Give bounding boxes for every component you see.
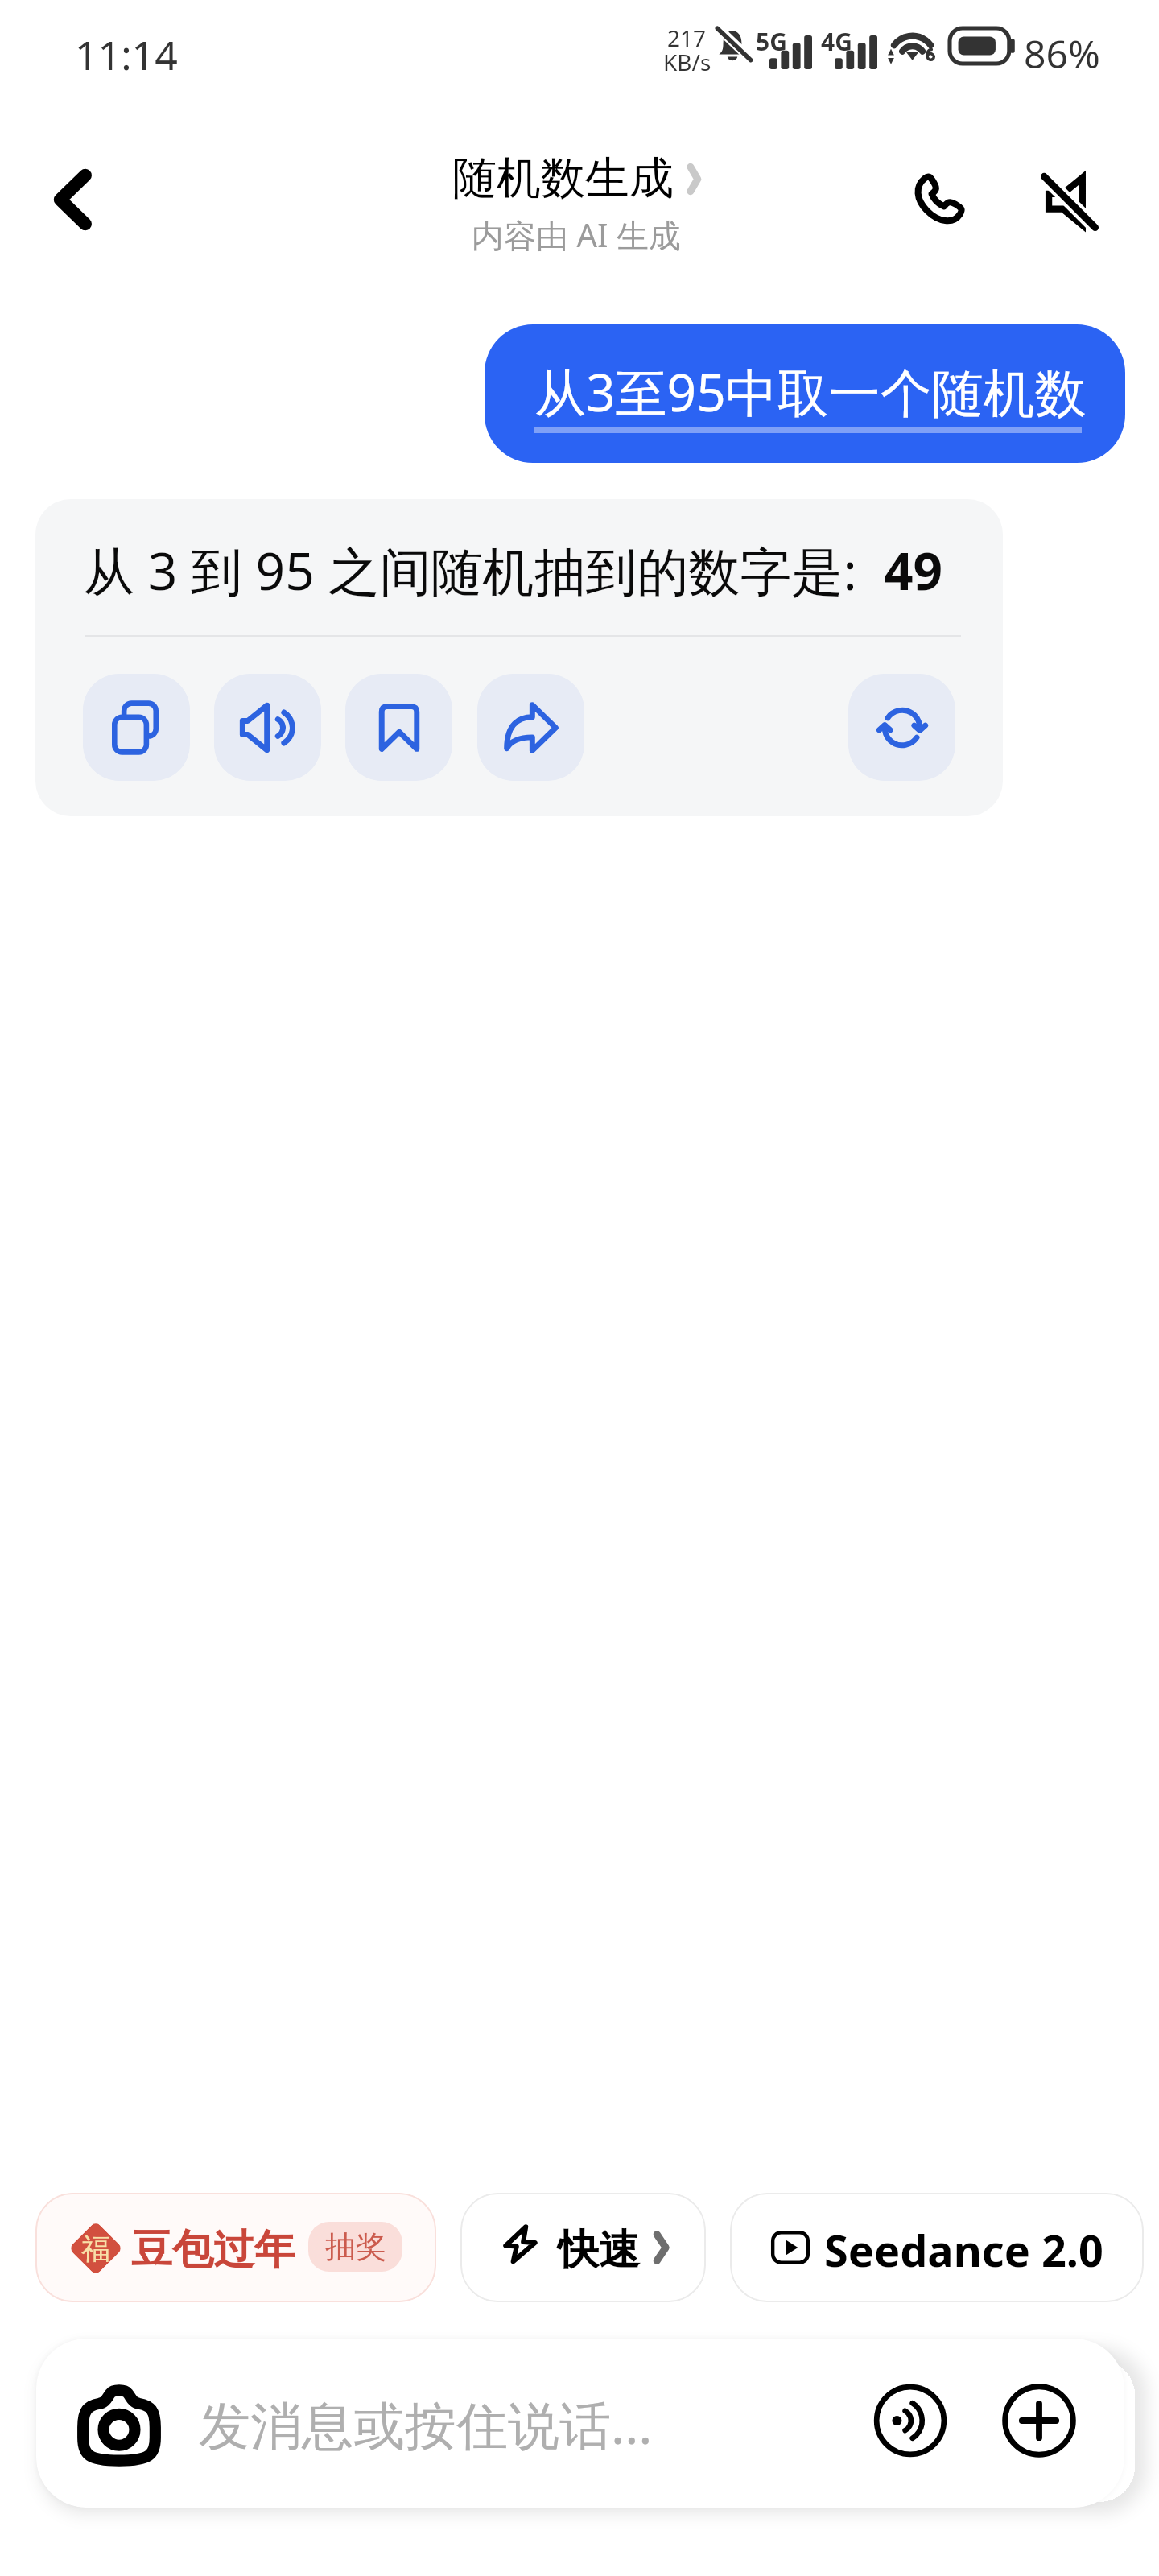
- button[interactable]: Share: [477, 674, 584, 781]
- staticText: 49: [884, 535, 943, 605]
- staticText: 发消息或按住说话...: [199, 2389, 653, 2459]
- button[interactable]: Read aloud: [214, 674, 321, 781]
- button[interactable]: 快速: [460, 2193, 706, 2302]
- button[interactable]: 从3至95中取一个随机数: [485, 324, 1125, 463]
- staticText: 福: [81, 2231, 110, 2267]
- button[interactable]: Copy: [83, 674, 190, 781]
- button[interactable]: Regenerate: [848, 674, 955, 781]
- staticText: 抽奖: [325, 2227, 386, 2266]
- staticText: 86%: [1024, 27, 1100, 80]
- staticText: 从3至95中取一个随机数: [534, 357, 1087, 427]
- staticText: 217: [667, 23, 707, 53]
- button[interactable]: 福: [35, 2193, 436, 2302]
- staticText: 11:14: [75, 27, 178, 82]
- staticText: 内容由 AI 生成: [472, 213, 681, 257]
- staticText: 4G: [821, 25, 852, 58]
- staticText: 快速: [558, 2224, 640, 2276]
- button[interactable]: Call: [890, 151, 987, 248]
- staticText: 随机数生成: [452, 151, 674, 206]
- button[interactable]: Seedance 2.0: [730, 2193, 1144, 2302]
- staticText: Seedance 2.0: [824, 2220, 1103, 2280]
- button[interactable]: Bookmark: [345, 674, 452, 781]
- button[interactable]: Mute notifications: [1021, 151, 1118, 248]
- button[interactable]: More options: [1002, 2384, 1076, 2458]
- staticText: KB/s: [663, 47, 711, 77]
- staticText: 从 3 到 95 之间随机抽到的数字是:: [83, 535, 884, 605]
- staticText: 5G: [756, 25, 787, 58]
- button[interactable]: 随机数生成: [0, 151, 1156, 257]
- button[interactable]: Voice input: [873, 2384, 947, 2458]
- staticText: 豆包过年: [131, 2224, 295, 2276]
- other: Camera: [72, 2378, 167, 2473]
- button[interactable]: Camera: [36, 2339, 1124, 2508]
- button[interactable]: Back: [24, 151, 121, 248]
